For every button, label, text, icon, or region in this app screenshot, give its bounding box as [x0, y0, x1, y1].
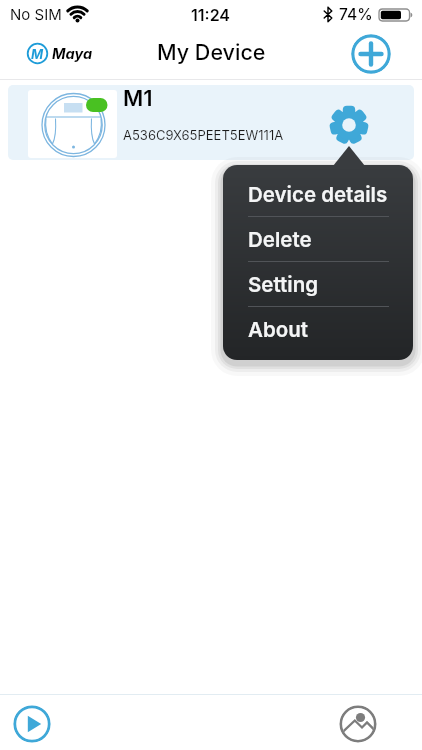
- staticText: Setting: [248, 272, 319, 297]
- button[interactable]: [351, 34, 391, 74]
- staticText: Maya: [52, 45, 93, 63]
- button[interactable]: About: [223, 307, 413, 352]
- button[interactable]: [8, 85, 414, 160]
- button[interactable]: Setting: [223, 262, 413, 307]
- staticText: M1: [123, 85, 153, 112]
- button[interactable]: [13, 705, 51, 743]
- staticText: Delete: [248, 227, 312, 252]
- staticText: 11:24: [191, 5, 231, 24]
- staticText: 74%: [339, 5, 373, 24]
- button[interactable]: [328, 104, 370, 146]
- button[interactable]: Device details: [223, 172, 413, 217]
- staticText: No SIM: [10, 5, 62, 23]
- staticText: My Device: [157, 39, 266, 65]
- staticText: M: [31, 46, 44, 62]
- button[interactable]: [339, 705, 377, 743]
- staticText: About: [248, 317, 308, 342]
- button[interactable]: Delete: [223, 217, 413, 262]
- staticText: A536C9X65PEET5EW111A: [123, 127, 284, 143]
- staticText: Device details: [248, 182, 388, 207]
